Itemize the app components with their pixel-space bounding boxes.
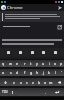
staticText: i	[49, 61, 50, 66]
button[interactable]: '	[58, 69, 64, 76]
button[interactable]: t	[28, 60, 34, 67]
button[interactable]: Send	[56, 4, 63, 11]
button[interactable]	[9, 88, 16, 96]
staticText: l	[55, 70, 56, 75]
staticText: p	[60, 61, 63, 66]
button[interactable]	[54, 78, 64, 86]
button[interactable]: f	[21, 69, 28, 76]
button[interactable]: u	[40, 60, 46, 67]
staticText: u	[42, 61, 45, 66]
button[interactable]: w	[7, 60, 14, 67]
staticText: '	[61, 70, 62, 75]
button[interactable]: k	[46, 69, 52, 76]
button[interactable]	[49, 88, 64, 96]
button[interactable]: e	[14, 60, 21, 67]
button[interactable]: n	[42, 78, 48, 86]
staticText: b	[38, 80, 41, 85]
staticText: a	[2, 70, 5, 75]
staticText: q	[2, 61, 5, 66]
staticText: t	[30, 61, 32, 66]
staticText: c	[26, 80, 28, 85]
button[interactable]: c	[24, 78, 30, 86]
button[interactable]: Location	[52, 49, 59, 56]
staticText: z	[13, 80, 15, 85]
staticText: Chrome	[7, 5, 23, 11]
staticText: f	[24, 70, 26, 75]
staticText: j	[43, 70, 44, 75]
button[interactable]: Open in new tab	[57, 24, 62, 29]
staticText: v	[32, 80, 34, 85]
staticText: ?123	[2, 90, 8, 94]
button[interactable]: q	[0, 60, 7, 67]
button[interactable]: r	[21, 60, 28, 67]
staticText: y	[36, 61, 38, 66]
staticText: x	[20, 80, 22, 85]
staticText: d	[16, 70, 19, 75]
staticText: k	[48, 70, 50, 75]
button[interactable]	[0, 78, 10, 86]
staticText: o	[54, 61, 57, 66]
staticText: e	[16, 61, 19, 66]
button[interactable]: Gallery	[5, 49, 12, 56]
staticText: m	[49, 80, 53, 85]
button[interactable]: i	[46, 60, 52, 67]
button[interactable]: .	[42, 88, 49, 96]
button[interactable]: Chrome	[0, 4, 64, 11]
button[interactable]: l	[52, 69, 58, 76]
button[interactable]: Video	[40, 49, 47, 56]
button[interactable]: v	[30, 78, 36, 86]
button[interactable]: j	[40, 69, 46, 76]
staticText: h	[36, 70, 39, 75]
staticText: s	[10, 70, 12, 75]
button[interactable]: s	[7, 69, 14, 76]
button[interactable]: Camera	[29, 49, 36, 56]
button[interactable]: ?123	[0, 88, 9, 96]
button[interactable]	[16, 88, 42, 96]
button[interactable]: g	[28, 69, 34, 76]
button[interactable]: a	[0, 69, 7, 76]
button[interactable]: x	[17, 78, 24, 86]
button[interactable]: o	[52, 60, 58, 67]
button[interactable]: h	[34, 69, 40, 76]
staticText: r	[24, 61, 26, 66]
staticText: g	[30, 70, 33, 75]
button[interactable]: p	[58, 60, 64, 67]
button[interactable]: m	[48, 78, 54, 86]
button[interactable]: Attach	[17, 49, 24, 56]
staticText: .	[45, 90, 46, 95]
button[interactable]: z	[10, 78, 17, 86]
staticText: n	[44, 80, 47, 85]
button[interactable]: b	[36, 78, 42, 86]
button[interactable]: d	[14, 69, 21, 76]
staticText: w	[9, 61, 12, 66]
button[interactable]: y	[34, 60, 40, 67]
